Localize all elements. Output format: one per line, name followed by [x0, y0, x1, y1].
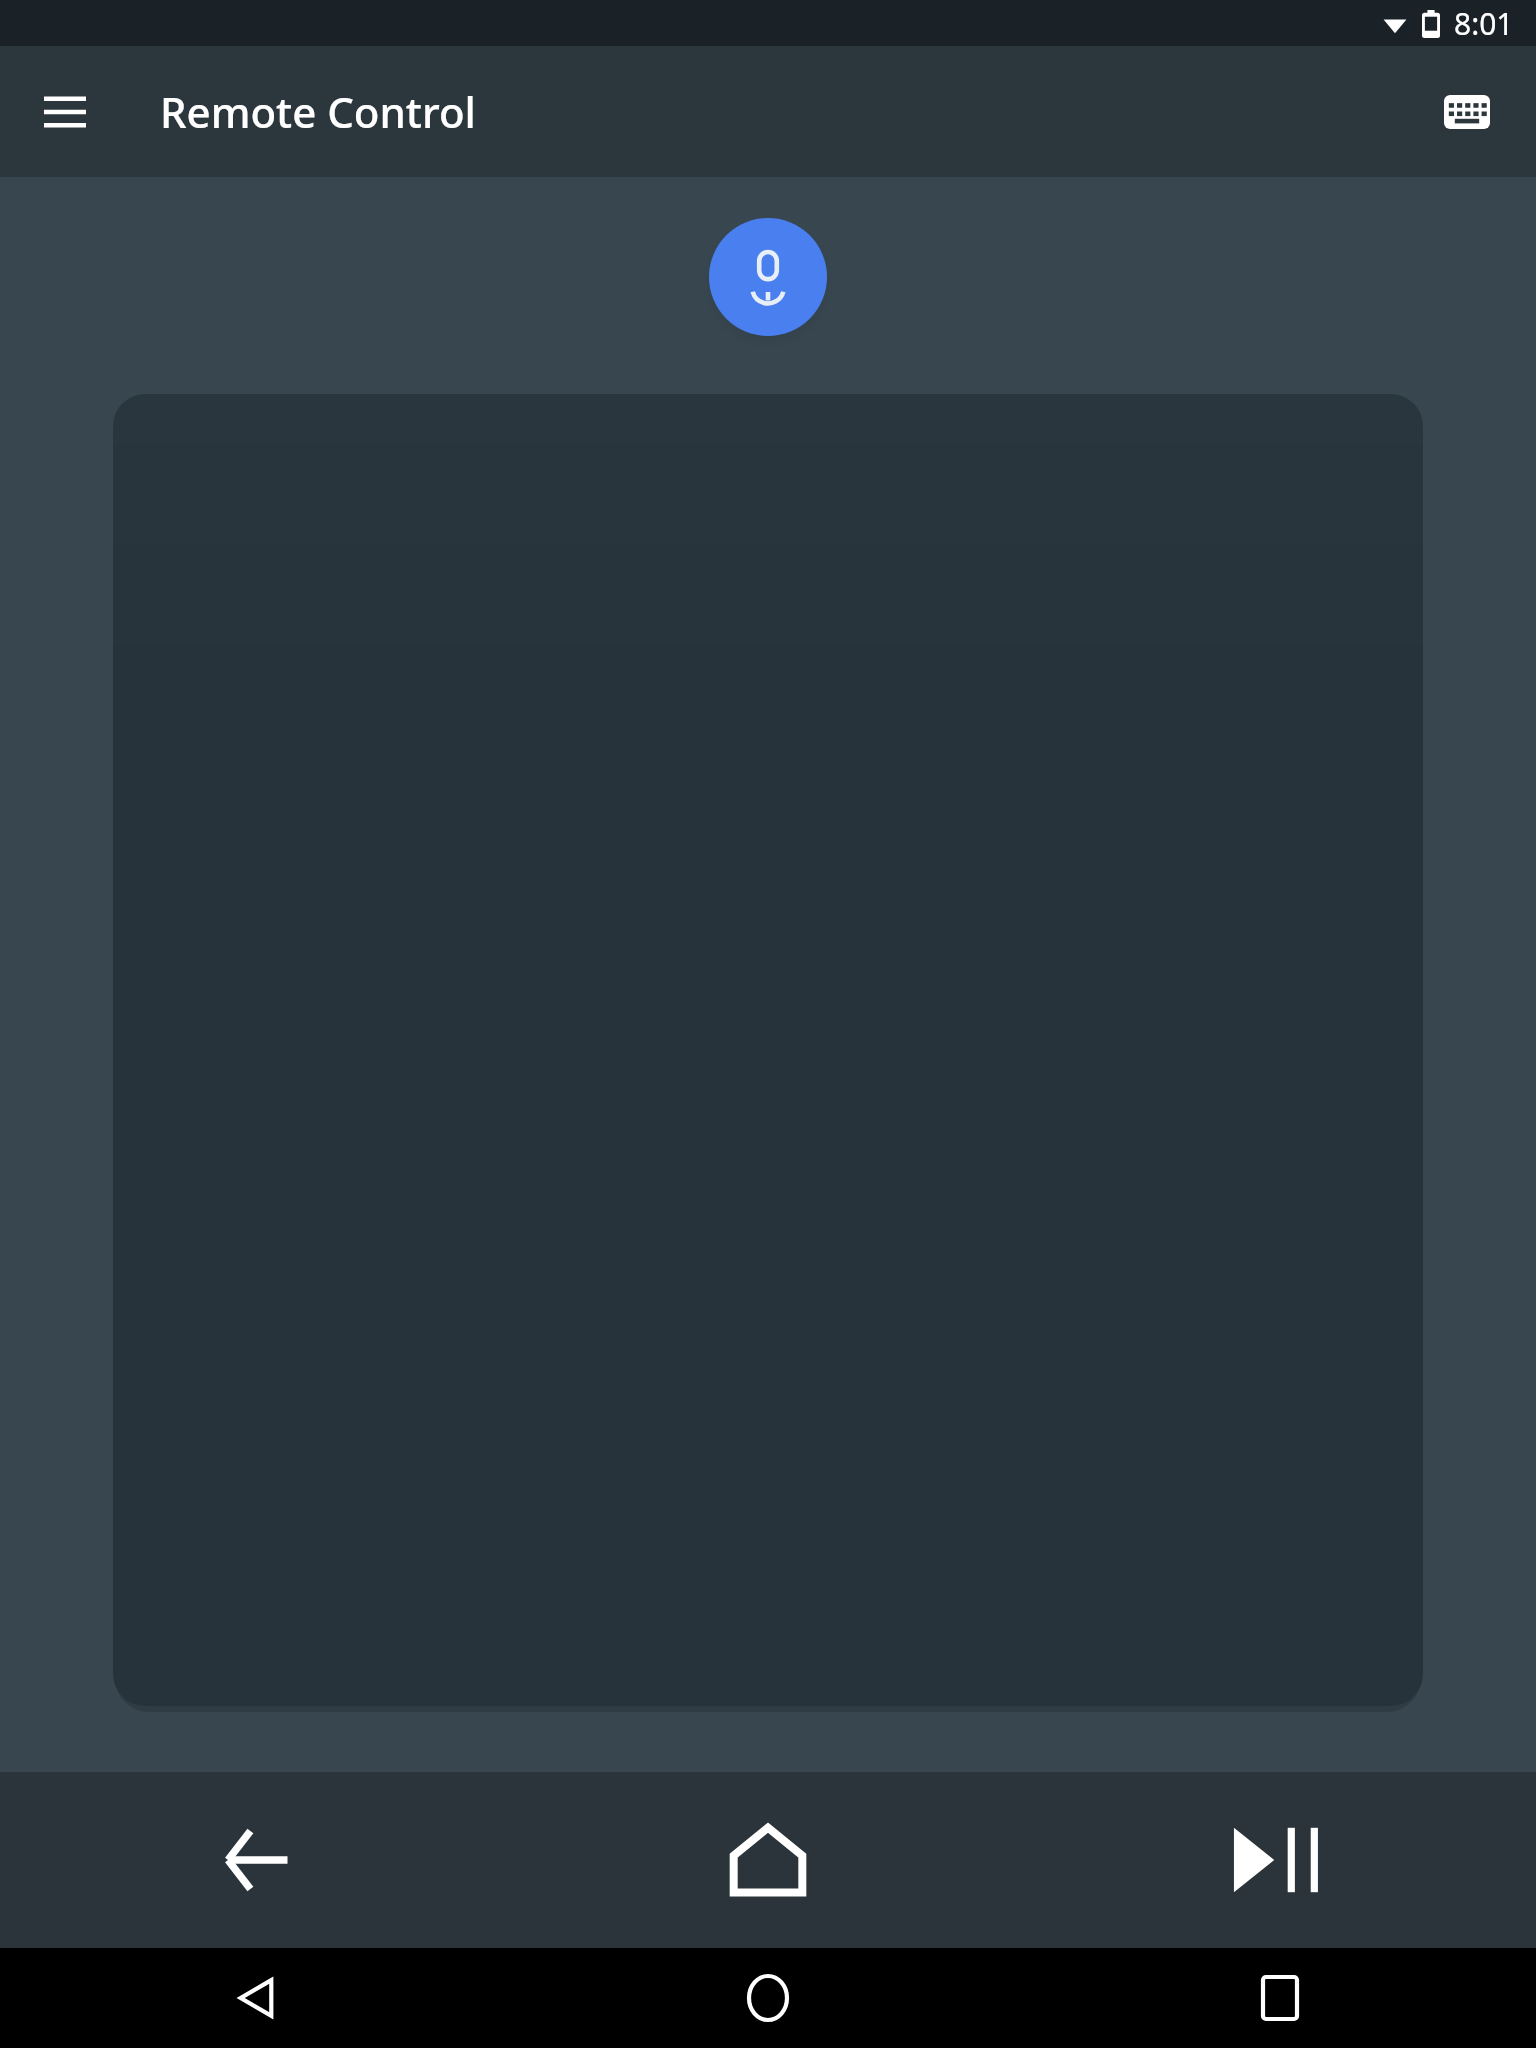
button[interactable]: Voice search — [709, 218, 827, 336]
staticText: Remote Control — [160, 83, 476, 140]
button[interactable]: Play or pause — [1024, 1772, 1536, 1948]
button[interactable]: Home — [512, 1772, 1024, 1948]
staticText: 8:01 — [1454, 3, 1514, 44]
button[interactable]: Home — [512, 1948, 1024, 2048]
button[interactable]: Recent apps — [1024, 1948, 1536, 2048]
button[interactable]: Keyboard — [1422, 67, 1512, 157]
button[interactable]: Open navigation drawer — [26, 73, 104, 151]
button[interactable]: Back — [0, 1948, 512, 2048]
button[interactable]: Back — [0, 1772, 512, 1948]
